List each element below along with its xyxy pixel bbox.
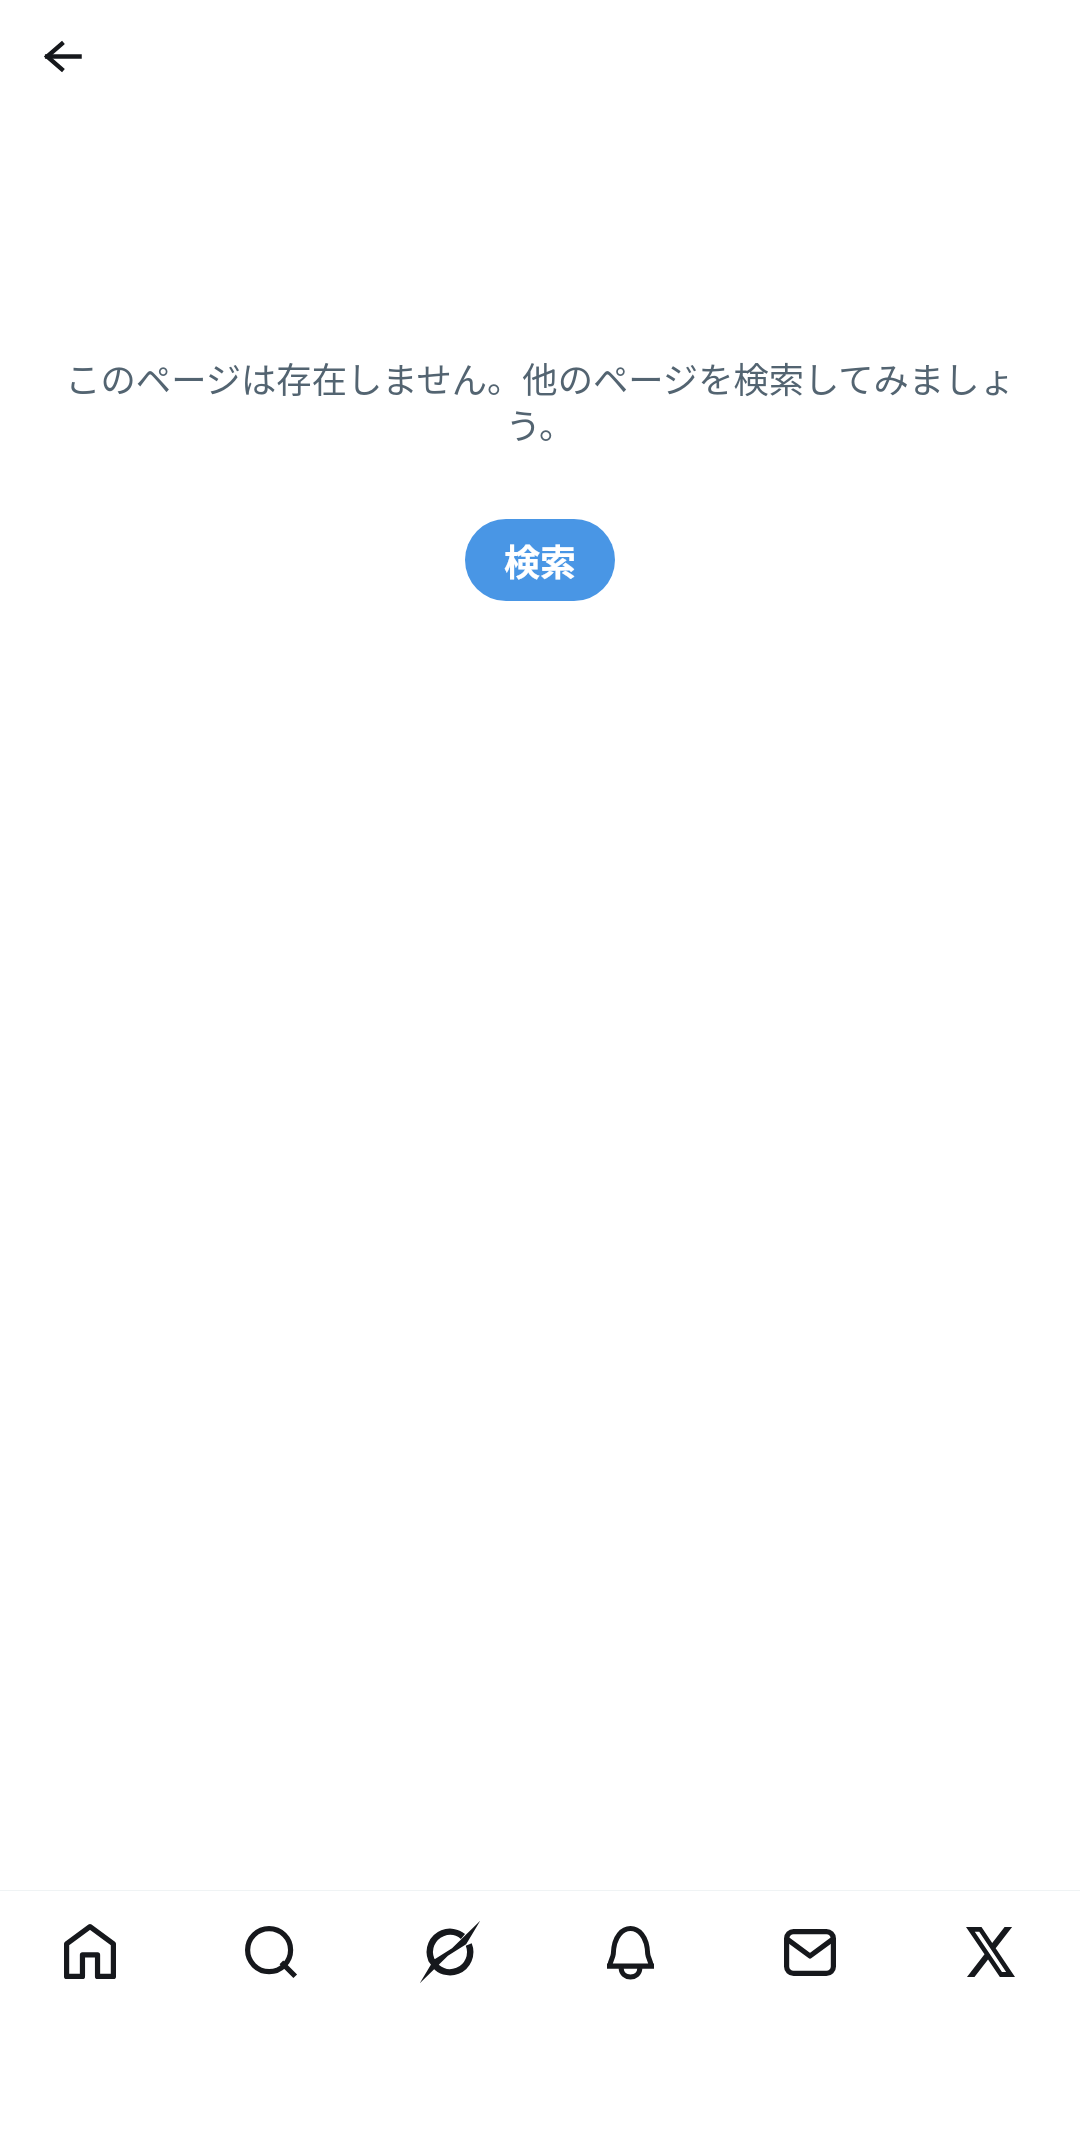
button[interactable]: Back: [17, 11, 107, 101]
button[interactable]: Notifications: [540, 1891, 720, 2013]
button[interactable]: Home: [0, 1891, 180, 2013]
button[interactable]: Grok: [360, 1891, 540, 2013]
staticText: 検索: [504, 534, 577, 586]
button[interactable]: Search: [180, 1891, 360, 2013]
staticText: このページは存在しません。他のページを検索してみましょう。: [40, 352, 1040, 449]
button[interactable]: 検索: [465, 519, 615, 601]
button[interactable]: X: [900, 1891, 1080, 2013]
button[interactable]: Messages: [720, 1891, 900, 2013]
